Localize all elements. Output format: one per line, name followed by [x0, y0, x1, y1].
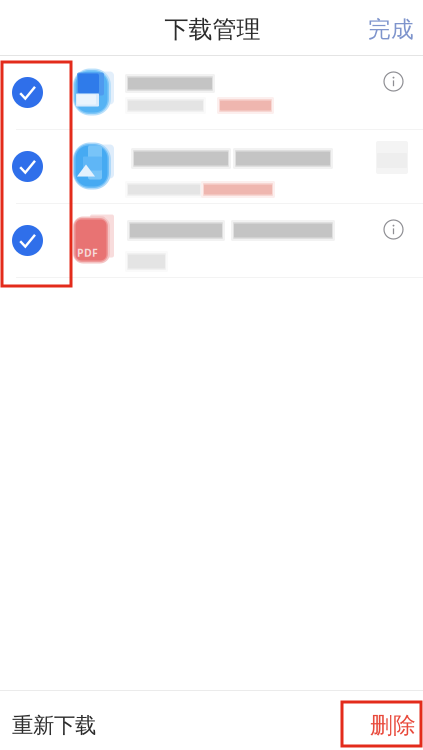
button[interactable]: Info — [376, 64, 410, 98]
staticText: 重新下载 — [12, 712, 96, 739]
button[interactable]: Info — [376, 212, 410, 246]
button[interactable]: Selected — [0, 55, 55, 129]
staticText: 下载管理 — [164, 15, 260, 44]
staticText: PDF — [77, 245, 98, 260]
staticText: 删除 — [370, 712, 416, 739]
staticText: 完成 — [368, 16, 414, 43]
button[interactable]: Selected — [0, 203, 55, 277]
button[interactable]: 完成 — [360, 2, 422, 57]
button[interactable]: Selected — [0, 129, 55, 203]
button[interactable]: 重新下载 — [12, 696, 122, 750]
button[interactable]: 删除 — [366, 696, 416, 750]
